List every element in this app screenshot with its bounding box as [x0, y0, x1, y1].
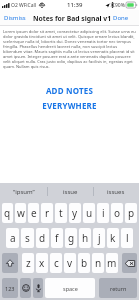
staticText: k: [110, 231, 116, 245]
staticText: issues: [107, 188, 125, 196]
staticText: e: [31, 206, 37, 220]
button[interactable]: x: [36, 253, 48, 273]
button[interactable]: i: [97, 203, 109, 223]
button[interactable]: r: [41, 203, 53, 223]
button[interactable]: a: [6, 228, 19, 248]
staticText: z: [26, 256, 31, 270]
button[interactable]: issues: [93, 183, 139, 200]
staticText: a: [10, 231, 16, 245]
staticText: q: [4, 206, 11, 220]
other: Backspace: [125, 260, 135, 267]
staticText: c: [54, 256, 59, 270]
button[interactable]: return: [99, 278, 137, 298]
staticText: return: [110, 285, 127, 292]
staticText: d: [39, 231, 46, 245]
button[interactable]: u: [83, 203, 95, 223]
staticText: 11:39: [67, 1, 83, 9]
button[interactable]: h: [79, 228, 91, 248]
staticText: y: [72, 206, 78, 220]
staticText: Notes for Bad signal v1: [33, 14, 112, 23]
button[interactable]: s: [21, 228, 34, 248]
staticText: t: [59, 206, 63, 220]
button[interactable]: p: [125, 203, 137, 223]
button[interactable]: g: [65, 228, 77, 248]
button[interactable]: t: [55, 203, 67, 223]
staticText: n: [95, 256, 102, 270]
button[interactable]: d: [36, 228, 49, 248]
staticText: j: [98, 231, 101, 245]
button[interactable]: issue: [47, 183, 93, 200]
button[interactable]: space: [45, 278, 95, 298]
staticText: x: [39, 256, 45, 270]
button[interactable]: c: [50, 253, 62, 273]
button[interactable]: Dictation: [33, 278, 43, 298]
staticText: 123: [5, 285, 15, 292]
button[interactable]: b: [78, 253, 90, 273]
button[interactable]: “ipsum”: [0, 183, 47, 200]
staticText: o: [114, 206, 121, 220]
staticText: p: [128, 206, 135, 220]
staticText: f: [55, 231, 59, 245]
staticText: 90%: [115, 2, 125, 9]
staticText: “ipsum”: [13, 188, 35, 196]
other: Emoji: [22, 284, 30, 292]
staticText: b: [81, 256, 88, 270]
button[interactable]: Shift: [2, 253, 18, 273]
staticText: w: [17, 206, 25, 220]
staticText: u: [86, 206, 93, 220]
button[interactable]: e: [28, 203, 39, 223]
staticText: m: [107, 256, 117, 270]
button[interactable]: v: [64, 253, 76, 273]
button[interactable]: l: [121, 228, 133, 248]
staticText: Done: [113, 14, 129, 22]
button[interactable]: f: [51, 228, 63, 248]
button[interactable]: j: [93, 228, 105, 248]
staticText: O2 WFiCall: [11, 2, 37, 9]
button[interactable]: m: [106, 253, 118, 273]
button[interactable]: Emoji: [20, 278, 31, 298]
button[interactable]: Dismiss: [3, 12, 27, 24]
button[interactable]: k: [107, 228, 119, 248]
button[interactable]: 123: [2, 278, 18, 298]
staticText: i: [102, 206, 105, 220]
staticText: Dismiss: [4, 14, 26, 22]
staticText: s: [25, 231, 30, 245]
button[interactable]: y: [69, 203, 81, 223]
button[interactable]: w: [15, 203, 26, 223]
other: Dictation: [36, 284, 41, 292]
button[interactable]: q: [2, 203, 13, 223]
staticText: Lorem ipsum dolor sit amet, consectetur …: [3, 29, 136, 69]
staticText: v: [67, 256, 73, 270]
button[interactable]: o: [111, 203, 123, 223]
staticText: space: [63, 285, 78, 292]
button[interactable]: z: [22, 253, 34, 273]
staticText: l: [126, 231, 129, 245]
button[interactable]: Done: [112, 12, 130, 24]
staticText: issue: [63, 188, 78, 196]
staticText: r: [45, 206, 50, 220]
staticText: EVERYWHERE: [3, 100, 136, 111]
button[interactable]: Backspace: [122, 253, 137, 273]
button[interactable]: n: [92, 253, 104, 273]
staticText: g: [68, 231, 75, 245]
other: Shift: [6, 259, 14, 268]
staticText: h: [82, 231, 89, 245]
staticText: ADD NOTES: [3, 85, 136, 96]
